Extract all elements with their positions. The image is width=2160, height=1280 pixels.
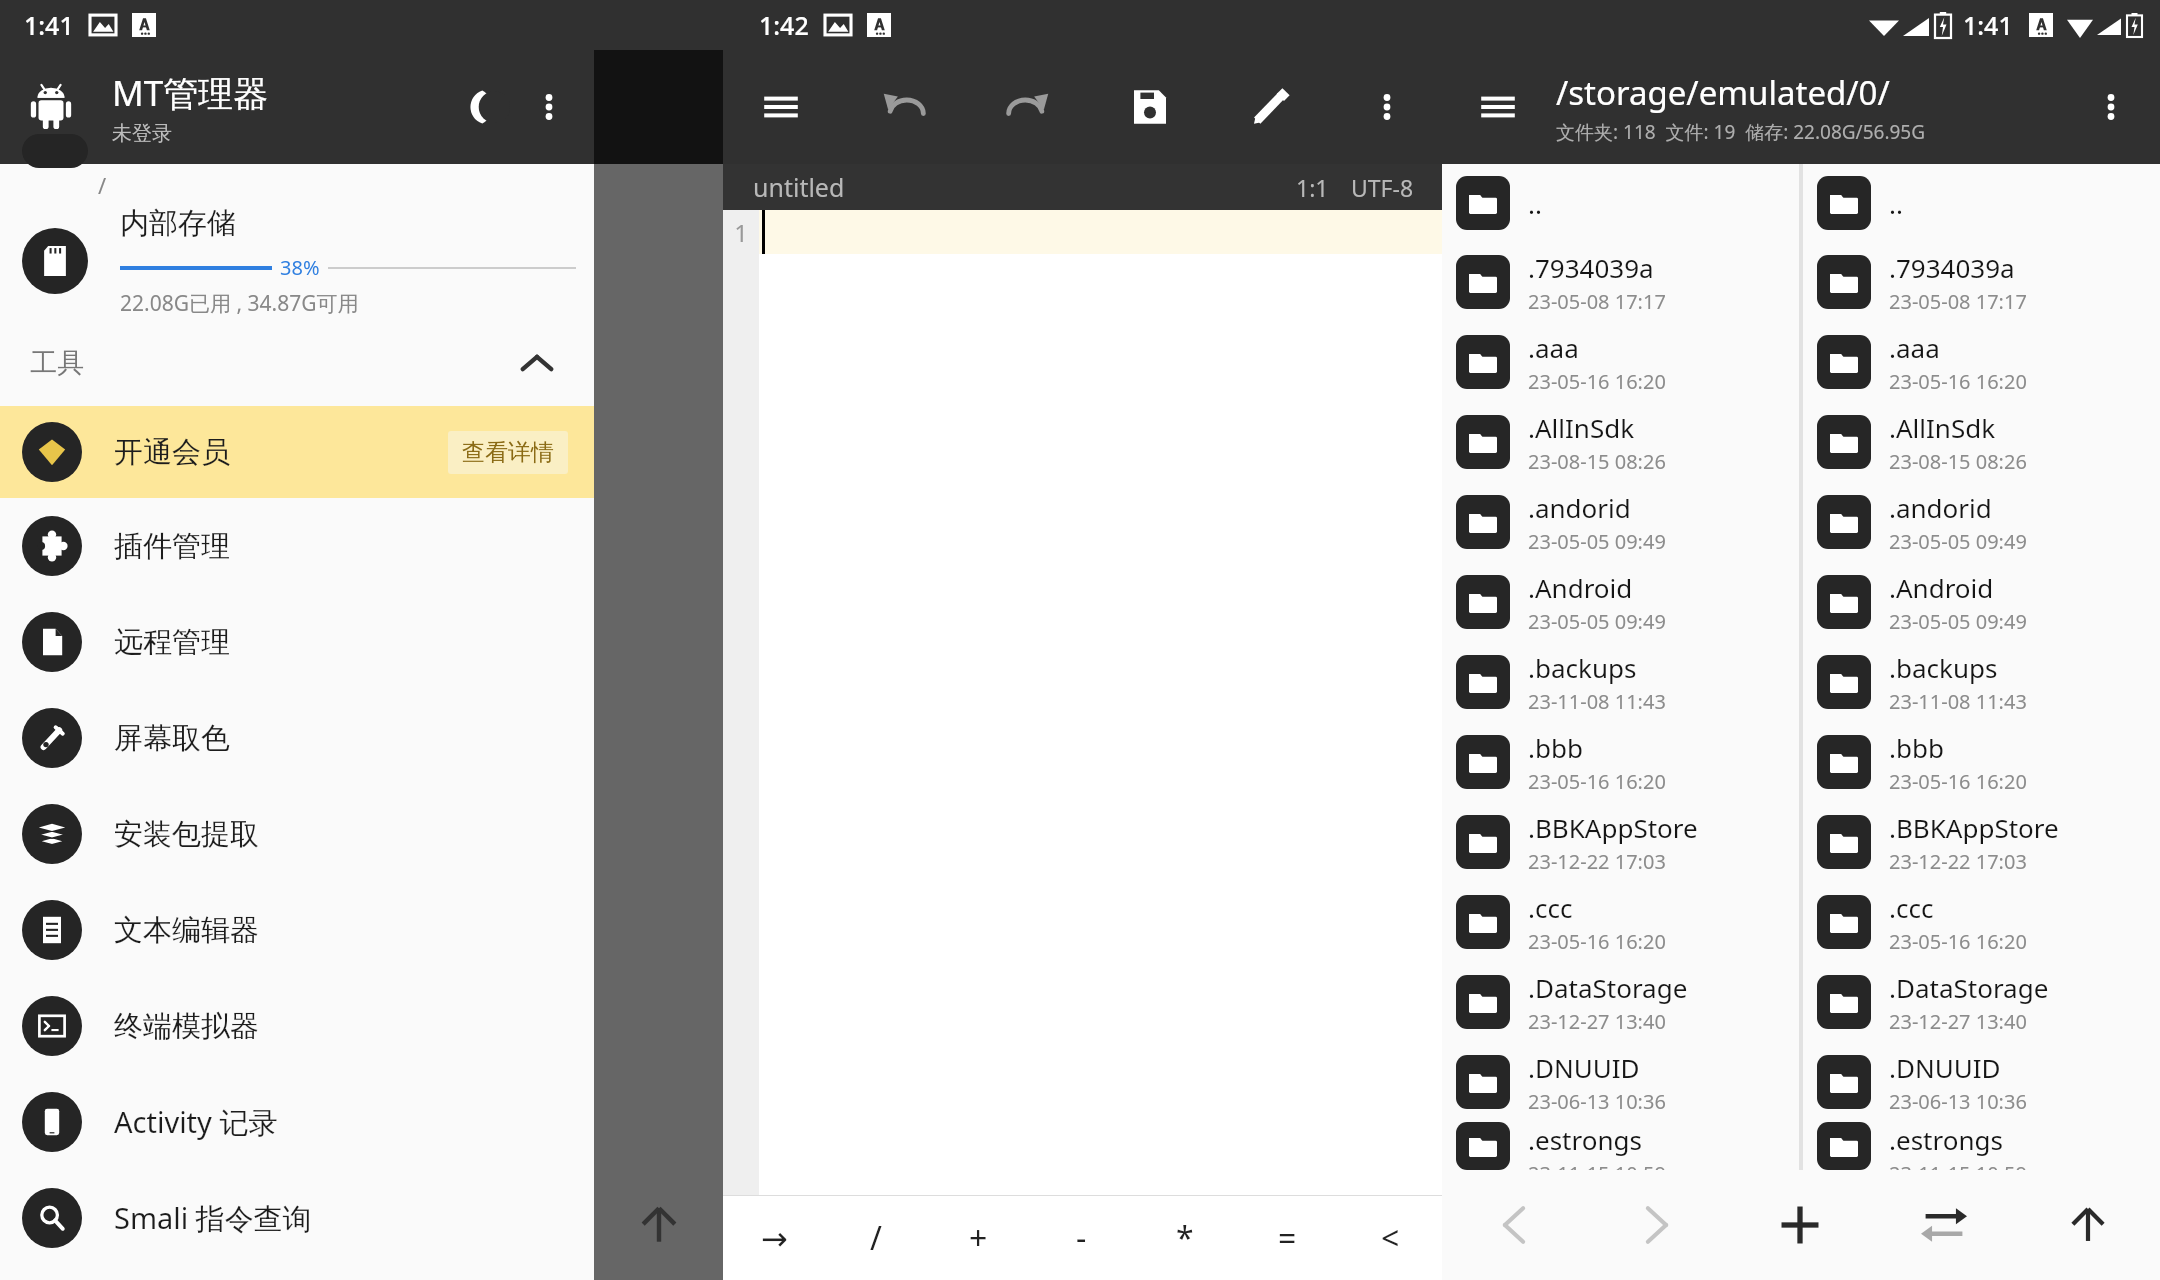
button[interactable]: 安装包提取 — [0, 786, 594, 882]
staticText: 23-12-27 13:40 — [1889, 1008, 2027, 1035]
button[interactable]: / — [825, 1196, 927, 1280]
button[interactable]: Up — [2016, 1170, 2160, 1280]
staticText: 23-11-08 11:43 — [1889, 688, 2027, 715]
button[interactable]: .ccc — [1803, 882, 2160, 962]
staticText: MT管理器 — [112, 69, 269, 117]
staticText: < — [1381, 1216, 1400, 1260]
staticText: .aaa — [1889, 330, 1940, 365]
button[interactable]: .bbb — [1442, 722, 1799, 802]
staticText: 23-06-13 10:36 — [1889, 1088, 2027, 1115]
staticText: 23-06-13 10:36 — [1528, 1088, 1666, 1115]
button[interactable]: Undo — [868, 71, 940, 143]
button[interactable]: .BBKAppStore — [1803, 802, 2160, 882]
staticText: .Android — [1528, 570, 1633, 605]
button[interactable]: .backups — [1803, 642, 2160, 722]
button[interactable]: .aaa — [1803, 322, 2160, 402]
button[interactable]: - — [1030, 1196, 1133, 1280]
button[interactable]: Back — [1442, 1170, 1585, 1280]
button[interactable]: .bbb — [1803, 722, 2160, 802]
button[interactable]: .ccc — [1442, 882, 1799, 962]
staticText: .bbb — [1528, 730, 1583, 765]
button[interactable]: .DNUUID — [1803, 1042, 2160, 1122]
button[interactable]: Night mode — [446, 75, 510, 139]
button[interactable]: .aaa — [1442, 322, 1799, 402]
button[interactable]: .Android — [1803, 562, 2160, 642]
button[interactable]: .andorid — [1442, 482, 1799, 562]
button[interactable]: Menu — [747, 73, 815, 141]
button[interactable]: Edit — [1236, 73, 1304, 141]
button[interactable]: 文本编辑器 — [0, 882, 594, 978]
button[interactable]: 屏幕取色 — [0, 690, 594, 786]
staticText: 22.08G已用 , 34.87G可用 — [120, 289, 359, 318]
button[interactable]: Account — [14, 70, 88, 144]
button[interactable]: Switch panel — [1872, 1170, 2016, 1280]
staticText: 1 — [734, 216, 748, 249]
staticText: + — [969, 1216, 988, 1260]
staticText: / — [98, 170, 107, 200]
staticText: .. — [1528, 186, 1542, 221]
staticText: .DataStorage — [1528, 970, 1688, 1005]
staticText: 屏幕取色 — [114, 720, 230, 757]
staticText: .andorid — [1528, 490, 1631, 525]
staticText: UTF-8 — [1351, 172, 1414, 203]
button[interactable]: Activity 记录 — [0, 1074, 594, 1170]
staticText: 23-05-16 16:20 — [1889, 768, 2027, 795]
button[interactable]: 插件管理 — [0, 498, 594, 594]
button[interactable]: < — [1339, 1196, 1442, 1280]
staticText: 23-08-15 08:26 — [1889, 448, 2027, 475]
staticText: .estrongs — [1889, 1122, 2003, 1157]
staticText: 23-05-05 09:49 — [1528, 528, 1666, 555]
button[interactable]: .DataStorage — [1442, 962, 1799, 1042]
button[interactable]: / — [0, 168, 594, 202]
button[interactable]: .AllInSdk — [1803, 402, 2160, 482]
button[interactable]: 终端模拟器 — [0, 978, 594, 1074]
staticText: .BBKAppStore — [1528, 810, 1698, 845]
button[interactable]: Redo — [992, 71, 1064, 143]
button[interactable]: .BBKAppStore — [1442, 802, 1799, 882]
button[interactable]: .AllInSdk — [1442, 402, 1799, 482]
button[interactable]: .DNUUID — [1442, 1042, 1799, 1122]
staticText: 23-05-16 16:20 — [1528, 768, 1666, 795]
button[interactable]: More options — [1356, 76, 1418, 138]
button[interactable]: .7934039a — [1442, 242, 1799, 322]
staticText: 终端模拟器 — [114, 1008, 259, 1045]
button[interactable]: New — [1728, 1170, 1872, 1280]
button[interactable]: = — [1236, 1196, 1339, 1280]
button[interactable]: 查看详情 — [448, 431, 568, 474]
button[interactable]: .backups — [1442, 642, 1799, 722]
button[interactable]: .7934039a — [1803, 242, 2160, 322]
button[interactable]: More options — [2080, 76, 2142, 138]
button[interactable]: .. — [1803, 164, 2160, 242]
staticText: 23-05-16 16:20 — [1528, 928, 1666, 955]
staticText: 1:42 — [759, 8, 809, 42]
button[interactable]: → — [723, 1196, 825, 1280]
staticText: 23-05-05 09:49 — [1889, 528, 2027, 555]
button[interactable]: .andorid — [1803, 482, 2160, 562]
button[interactable]: More options — [518, 76, 580, 138]
staticText: untitled — [753, 170, 845, 204]
button[interactable]: .. — [1442, 164, 1799, 242]
button[interactable]: 内部存储 — [0, 202, 594, 320]
staticText: .ccc — [1889, 890, 1934, 925]
staticText: .bbb — [1889, 730, 1944, 765]
button[interactable]: .estrongs — [1803, 1122, 2160, 1170]
button[interactable]: Up — [594, 1170, 723, 1280]
button[interactable]: + — [927, 1196, 1030, 1280]
button[interactable]: 远程管理 — [0, 594, 594, 690]
button[interactable]: .DataStorage — [1803, 962, 2160, 1042]
button[interactable]: Forward — [1585, 1170, 1728, 1280]
button[interactable]: * — [1133, 1196, 1236, 1280]
staticText: .AllInSdk — [1528, 410, 1635, 445]
staticText: .DNUUID — [1528, 1050, 1640, 1085]
button[interactable]: .estrongs — [1442, 1122, 1799, 1170]
button[interactable]: 工具 — [0, 320, 594, 406]
button[interactable]: 开通会员 — [0, 406, 594, 498]
staticText: .. — [1889, 186, 1903, 221]
button[interactable]: Save — [1116, 73, 1184, 141]
button[interactable]: .Android — [1442, 562, 1799, 642]
staticText: .7934039a — [1528, 250, 1654, 285]
staticText: / — [870, 1216, 882, 1260]
staticText: 远程管理 — [114, 624, 230, 661]
button[interactable]: Smali 指令查询 — [0, 1170, 594, 1266]
button[interactable]: Menu — [1464, 73, 1532, 141]
